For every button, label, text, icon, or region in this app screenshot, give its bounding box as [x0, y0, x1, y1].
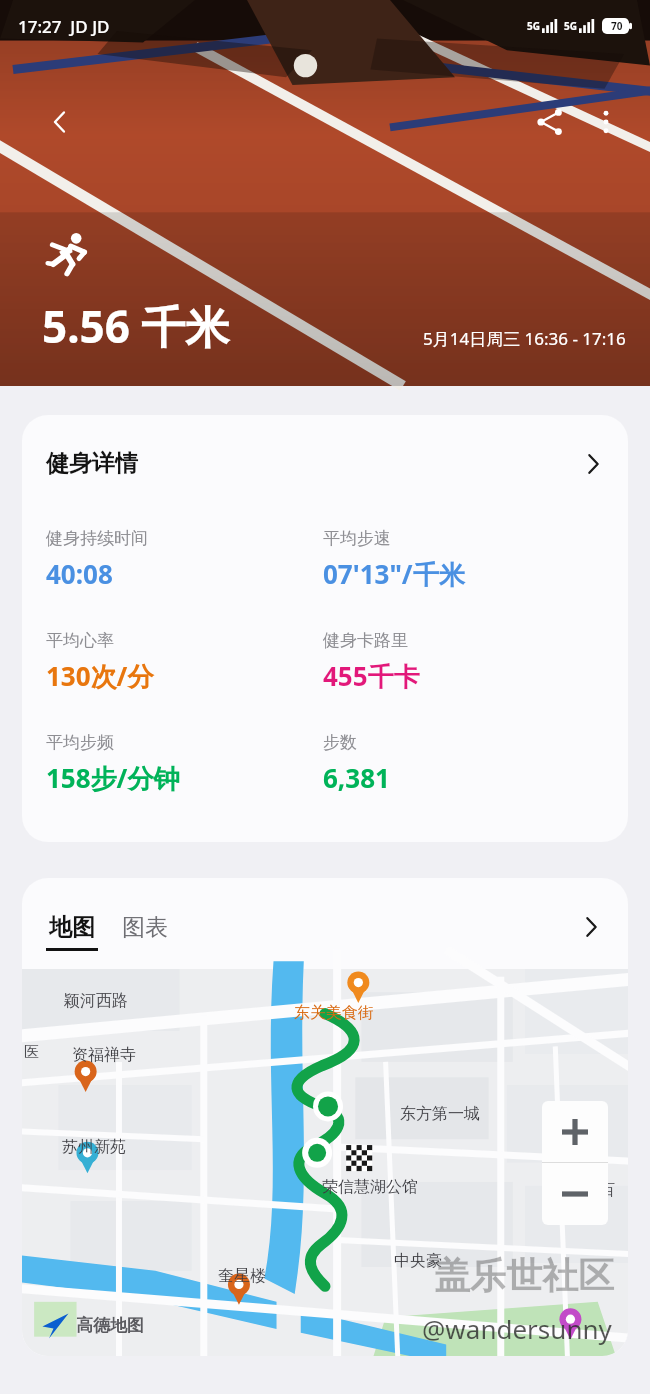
button[interactable]: Open map — [576, 912, 606, 942]
staticText: 步数 — [323, 732, 357, 753]
button[interactable]: 平均步速 — [323, 528, 616, 592]
staticText: 东方第一城 — [400, 1104, 480, 1124]
button[interactable]: 颖河西路 — [22, 969, 628, 1356]
staticText: @wandersunny — [422, 1311, 612, 1346]
staticText: 荣信慧湖公馆 — [322, 1177, 418, 1197]
staticText: 70 — [611, 19, 623, 33]
button[interactable]: Share — [522, 94, 578, 150]
button[interactable]: 地图 — [46, 913, 98, 951]
button[interactable]: 步数 — [323, 732, 616, 795]
staticText: 中央豪 — [394, 1251, 442, 1271]
staticText: 平均步频 — [46, 732, 114, 753]
staticText: 东关美食街 — [294, 1003, 374, 1023]
button[interactable]: Zoom out — [542, 1163, 608, 1225]
staticText: 颖河西路 — [64, 991, 128, 1011]
staticText: 平均步速 — [323, 528, 391, 549]
staticText: 资福禅寺 — [72, 1045, 136, 1065]
staticText: 盖乐世社区 — [434, 1253, 614, 1298]
button[interactable]: 平均步频 — [46, 732, 323, 796]
staticText: 高德地图 — [76, 1315, 144, 1336]
button[interactable]: 健身卡路里 — [323, 630, 616, 694]
button[interactable]: Back — [32, 94, 88, 150]
staticText: 地图 — [49, 913, 95, 942]
staticText: 40:08 — [46, 556, 113, 591]
staticText: 图表 — [122, 913, 168, 942]
staticText: 5G — [564, 19, 577, 33]
staticText: 奎星楼 — [218, 1266, 266, 1286]
button[interactable]: 健身详情 — [22, 415, 628, 494]
staticText: 百 — [600, 1181, 615, 1200]
button[interactable]: More options — [578, 94, 634, 150]
staticText: 苏州新苑 — [62, 1137, 126, 1157]
staticText: 5.56 千米 — [42, 296, 230, 356]
staticText: 5月14日周三 16:36 - 17:16 — [423, 327, 626, 350]
staticText: 健身详情 — [46, 449, 138, 478]
staticText: 17:27 JD JD — [18, 15, 110, 38]
button[interactable]: 平均心率 — [46, 630, 323, 694]
staticText: 医 — [24, 1043, 39, 1062]
staticText: 455千卡 — [323, 658, 420, 694]
button[interactable]: 健身持续时间 — [46, 528, 323, 591]
button[interactable]: Zoom in — [542, 1101, 608, 1162]
staticText: 07'13"/千米 — [323, 556, 465, 592]
staticText: 158步/分钟 — [46, 760, 180, 796]
staticText: 5G — [527, 19, 540, 33]
staticText: 健身持续时间 — [46, 528, 148, 549]
staticText: 130次/分 — [46, 658, 154, 694]
staticText: 6,381 — [323, 760, 390, 795]
staticText: 平均心率 — [46, 630, 114, 651]
staticText: 健身卡路里 — [323, 630, 408, 651]
button[interactable]: 图表 — [122, 913, 168, 951]
